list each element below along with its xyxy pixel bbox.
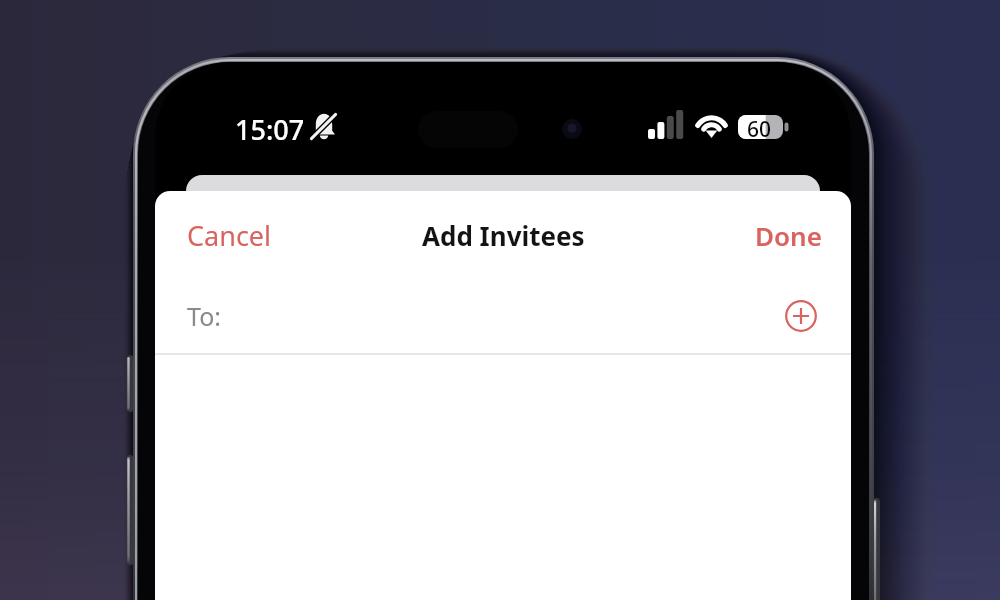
staticText: Add Invitees: [422, 218, 585, 253]
staticText: Done: [755, 218, 822, 253]
button[interactable]: Done: [749, 210, 828, 261]
staticText: 15:07: [235, 111, 305, 148]
staticText: To:: [187, 299, 221, 333]
button[interactable]: Cancel: [181, 209, 278, 262]
staticText: 60: [747, 115, 772, 144]
button[interactable]: Add contact: [785, 300, 817, 332]
staticText: Cancel: [187, 217, 272, 254]
